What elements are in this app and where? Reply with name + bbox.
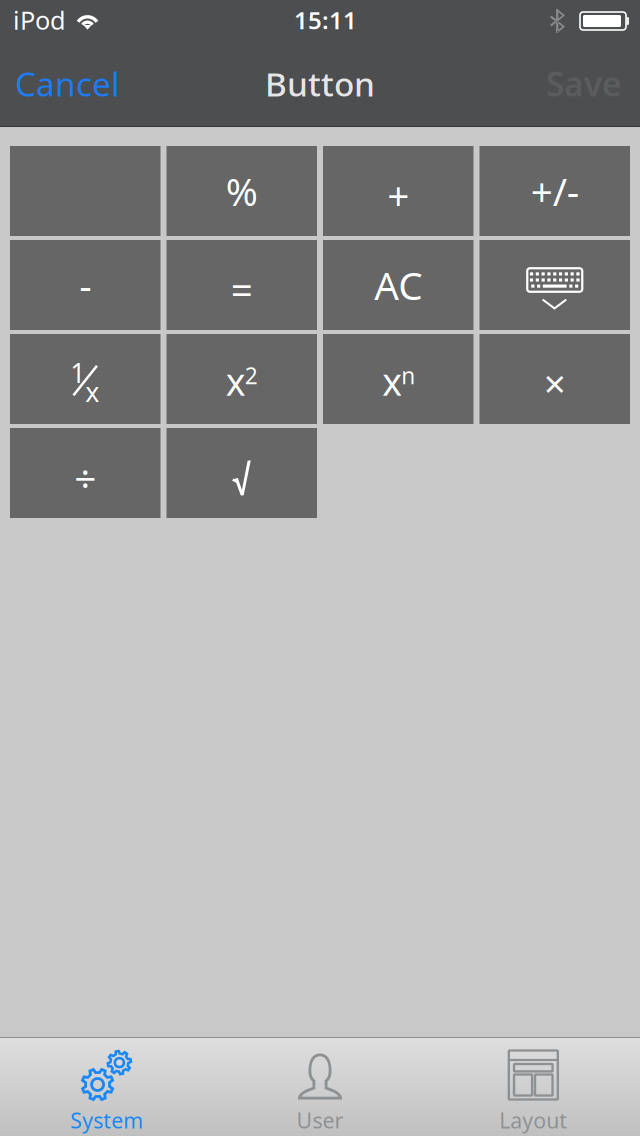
button[interactable]: - xyxy=(10,240,160,330)
button[interactable] xyxy=(166,428,317,518)
button[interactable]: = xyxy=(166,240,317,330)
button[interactable] xyxy=(479,240,630,330)
button[interactable]: +/- xyxy=(479,146,630,236)
staticText: × xyxy=(544,357,566,409)
button[interactable]: x xyxy=(166,334,317,424)
staticText: 1 xyxy=(70,355,85,390)
staticText: Cancel xyxy=(15,61,120,106)
staticText: 2 xyxy=(245,360,258,391)
button[interactable]: System xyxy=(0,1037,213,1136)
staticText: Button xyxy=(265,61,375,106)
staticText: x xyxy=(382,356,402,406)
staticText: Layout xyxy=(499,1106,567,1134)
button[interactable]: AC xyxy=(323,240,473,330)
button[interactable]: % xyxy=(166,146,317,236)
staticText: 15:11 xyxy=(294,4,357,36)
staticText: - xyxy=(79,259,91,311)
staticText: AC xyxy=(374,259,422,311)
staticText: User xyxy=(296,1106,343,1134)
staticText: +/- xyxy=(531,165,579,217)
staticText: x xyxy=(226,356,246,406)
staticText: = xyxy=(231,263,253,315)
staticText: + xyxy=(387,169,409,221)
staticText: System xyxy=(70,1106,143,1134)
staticText: n xyxy=(401,360,415,391)
button[interactable]: Save xyxy=(532,40,640,127)
staticText: Save xyxy=(546,61,622,106)
button[interactable]: ÷ xyxy=(10,428,160,518)
button[interactable]: 1 xyxy=(10,334,160,424)
staticText: % xyxy=(226,165,258,217)
staticText: x xyxy=(85,374,99,409)
button[interactable]: x xyxy=(323,334,473,424)
staticText: iPod xyxy=(13,3,66,37)
button[interactable]: User xyxy=(213,1037,427,1136)
button[interactable]: Cancel xyxy=(0,40,134,127)
button[interactable]: × xyxy=(479,334,630,424)
staticText: ÷ xyxy=(74,452,96,504)
button[interactable]: + xyxy=(323,146,473,236)
button[interactable]: Layout xyxy=(427,1037,640,1136)
